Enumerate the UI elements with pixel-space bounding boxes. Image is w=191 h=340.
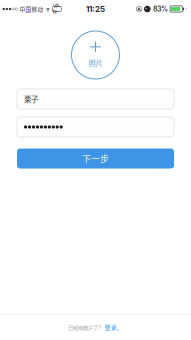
button[interactable]: 登录。 <box>105 323 123 331</box>
staticText: 11:25 <box>86 4 105 14</box>
staticText: 中国移动 <box>19 5 43 13</box>
staticText: 栗子 <box>24 94 38 104</box>
staticText: 照片 <box>88 58 102 68</box>
button[interactable]: 添加照片 <box>71 31 119 79</box>
staticText: VPN <box>53 3 61 15</box>
staticText: 登录。 <box>105 323 123 331</box>
button[interactable] <box>17 117 174 137</box>
button[interactable]: 栗子 <box>17 89 174 109</box>
staticText: 下一步 <box>82 152 109 165</box>
button[interactable]: 下一步 <box>17 148 174 168</box>
staticText: 83% <box>153 5 168 13</box>
staticText: 已经有帐户了？ <box>68 324 103 331</box>
